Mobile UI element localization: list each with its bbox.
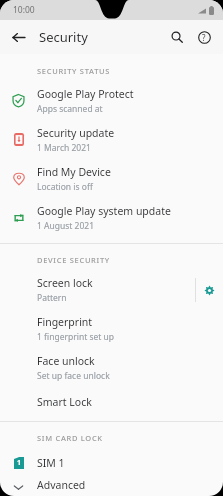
staticText: Location is off xyxy=(37,181,93,193)
staticText: 1 March 2021 xyxy=(37,142,91,154)
button[interactable]: Google Play system update xyxy=(0,198,223,237)
button[interactable]: Help xyxy=(191,24,217,50)
staticText: SECURITY STATUS xyxy=(37,66,111,76)
button[interactable]: Search xyxy=(164,24,190,50)
staticText: Advanced xyxy=(37,478,86,492)
staticText: Smart Lock xyxy=(37,395,92,409)
button[interactable]: Google Play Protect xyxy=(0,81,223,120)
button[interactable]: Advanced xyxy=(0,478,223,496)
button[interactable]: Face unlock xyxy=(0,348,223,387)
staticText: ? xyxy=(202,32,206,43)
button[interactable]: Screen lock xyxy=(0,270,223,309)
staticText: Device admin apps, Encryption & credenti… xyxy=(37,494,215,496)
staticText: DEVICE SECURITY xyxy=(37,255,110,265)
staticText: Fingerprint xyxy=(37,315,93,329)
staticText: 10:00 xyxy=(13,4,35,16)
button[interactable]: Smart Lock xyxy=(0,387,223,417)
staticText: Security update xyxy=(37,126,115,140)
staticText: Find My Device xyxy=(37,165,111,179)
staticText: SIM CARD LOCK xyxy=(37,433,103,443)
staticText: Google Play system update xyxy=(37,204,171,218)
button[interactable]: Screen lock settings xyxy=(196,273,223,307)
button[interactable]: Fingerprint xyxy=(0,309,223,348)
staticText: Google Play Protect xyxy=(37,87,134,101)
staticText: Security xyxy=(39,28,88,46)
staticText: SIM 1 xyxy=(37,456,65,470)
button[interactable]: Find My Device xyxy=(0,159,223,198)
button[interactable]: 1 xyxy=(0,448,223,478)
staticText: Pattern xyxy=(37,292,67,304)
staticText: Set up face unlock xyxy=(37,370,110,382)
button[interactable]: Security update xyxy=(0,120,223,159)
staticText: 1 August 2021 xyxy=(37,220,95,232)
staticText: 1 xyxy=(17,458,22,468)
staticText: Apps scanned at xyxy=(37,103,103,115)
staticText: Face unlock xyxy=(37,354,95,368)
staticText: Screen lock xyxy=(37,276,93,290)
button[interactable]: Back xyxy=(6,25,30,49)
staticText: 1 fingerprint set up xyxy=(37,331,115,343)
